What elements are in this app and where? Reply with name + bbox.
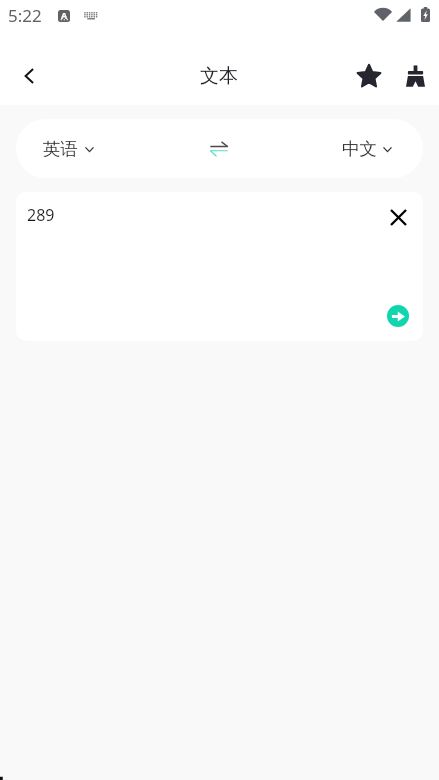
button[interactable]: 中文: [342, 138, 392, 160]
staticText: 5:22: [8, 4, 42, 27]
button[interactable]: Favorite: [349, 54, 393, 98]
button[interactable]: Translate: [387, 305, 409, 327]
staticText: 中文: [342, 138, 377, 160]
button[interactable]: Clear text: [376, 195, 420, 239]
button[interactable]: Back: [8, 54, 52, 98]
button[interactable]: Swap languages: [197, 127, 241, 171]
button[interactable]: Clear all: [393, 54, 437, 98]
button[interactable]: 英语: [43, 138, 197, 160]
staticText: 英语: [43, 138, 78, 160]
staticText: 289: [27, 204, 55, 226]
staticText: A: [61, 10, 68, 21]
staticText: 文本: [200, 64, 238, 88]
